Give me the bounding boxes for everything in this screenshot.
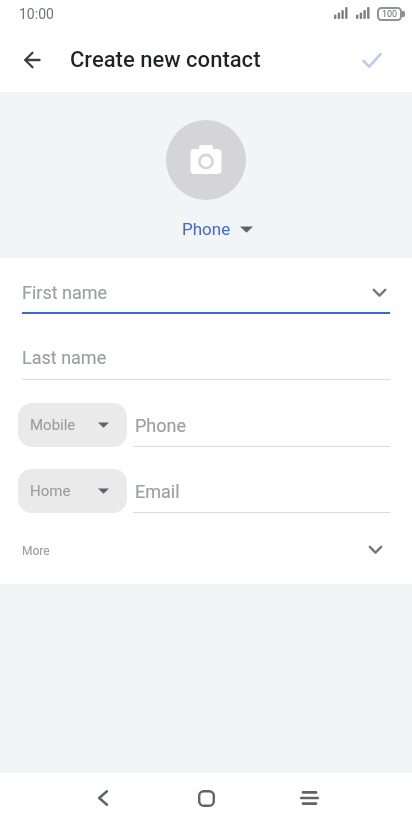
button[interactable] [83, 778, 123, 818]
staticText: Home [30, 482, 71, 500]
button[interactable]: First name [22, 258, 390, 314]
staticText: Phone [182, 219, 231, 239]
button[interactable] [14, 42, 50, 78]
staticText: 100 [382, 9, 398, 20]
button[interactable] [352, 40, 392, 80]
button[interactable] [186, 778, 226, 818]
staticText: More [22, 544, 50, 558]
button[interactable]: Last name [22, 314, 390, 380]
button[interactable]: Email [133, 469, 390, 513]
button[interactable]: Home [18, 469, 127, 513]
staticText: Phone [135, 415, 187, 436]
button[interactable]: Phone [160, 219, 253, 239]
button[interactable]: Mobile [18, 403, 127, 447]
staticText: Mobile [30, 416, 76, 434]
staticText: Create new contact [70, 47, 261, 73]
button[interactable] [289, 778, 329, 818]
button[interactable]: More [22, 514, 390, 584]
staticText: Email [135, 481, 180, 502]
staticText: Last name [22, 347, 107, 368]
button[interactable] [166, 120, 246, 200]
button[interactable]: Phone [133, 403, 390, 447]
staticText: First name [22, 282, 108, 303]
staticText: 10:00 [19, 6, 54, 22]
